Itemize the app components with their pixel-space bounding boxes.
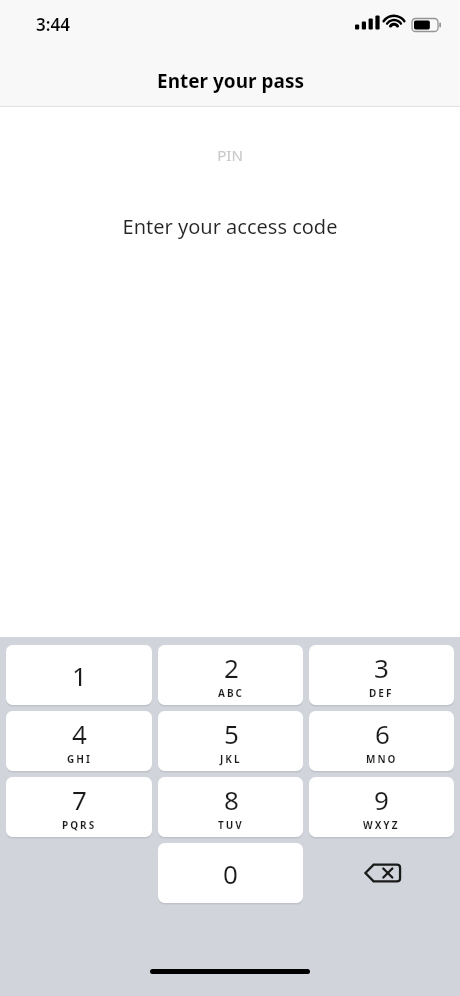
staticText: PIN xyxy=(0,145,460,165)
button[interactable]: 0 xyxy=(158,843,303,903)
button[interactable]: 1 xyxy=(6,645,152,705)
button[interactable]: 9 xyxy=(309,777,454,837)
button[interactable]: 7 xyxy=(6,777,152,837)
staticText: 6 xyxy=(375,716,390,751)
button[interactable]: 8 xyxy=(158,777,303,837)
staticText: 2 xyxy=(224,650,239,685)
staticText: 5 xyxy=(224,716,239,751)
button[interactable]: 4 xyxy=(6,711,152,771)
staticText: Enter your access code xyxy=(0,213,460,240)
staticText: JKL xyxy=(220,752,242,766)
staticText: MNO xyxy=(366,752,398,766)
staticText: 3 xyxy=(374,650,389,685)
staticText: PQRS xyxy=(62,818,97,832)
button[interactable]: 5 xyxy=(158,711,303,771)
staticText: 1 xyxy=(72,658,87,693)
staticText: 3:44 xyxy=(36,13,70,36)
staticText: Enter your pass xyxy=(157,68,304,94)
button[interactable]: Backspace xyxy=(309,843,454,903)
staticText: 0 xyxy=(223,856,238,891)
button[interactable]: 2 xyxy=(158,645,303,705)
staticText: GHI xyxy=(67,752,92,766)
staticText: 4 xyxy=(72,716,87,751)
staticText: DEF xyxy=(369,686,394,700)
button[interactable]: 3 xyxy=(309,645,454,705)
staticText: TUV xyxy=(218,818,244,832)
staticText: 8 xyxy=(224,782,239,817)
staticText: 7 xyxy=(72,782,87,817)
staticText: 9 xyxy=(374,782,389,817)
staticText: ABC xyxy=(218,686,244,700)
staticText: WXYZ xyxy=(363,818,400,832)
button[interactable]: 6 xyxy=(309,711,454,771)
